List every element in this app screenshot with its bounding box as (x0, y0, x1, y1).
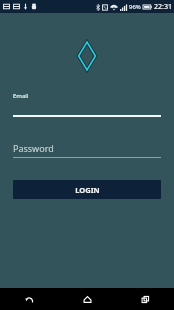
button[interactable]: Email (0, 92, 174, 117)
staticText: 22:31 (154, 2, 172, 12)
button[interactable]: Home (58, 288, 116, 310)
staticText: Email (13, 92, 29, 100)
button[interactable]: Password (0, 142, 174, 158)
button[interactable]: LOGIN (13, 180, 161, 199)
staticText: Password (13, 142, 54, 154)
staticText: 96% (129, 3, 141, 11)
button[interactable]: Back (0, 288, 58, 310)
button[interactable]: Recent apps (116, 288, 174, 310)
staticText: LOGIN (75, 185, 100, 195)
